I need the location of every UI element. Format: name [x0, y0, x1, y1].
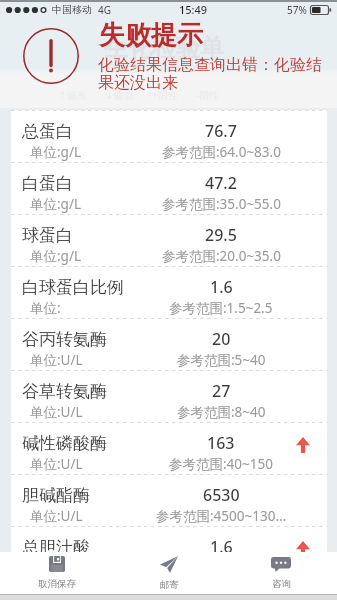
staticText: 谷草转氨酶 — [22, 381, 107, 402]
button[interactable]: Consult — [225, 557, 337, 590]
button[interactable]: 白蛋白 — [11, 162, 327, 214]
staticText: +阳性 — [152, 88, 178, 102]
button[interactable]: 胆碱酯酶 — [11, 474, 327, 526]
button[interactable]: 白球蛋白比例 — [11, 266, 327, 318]
staticText: 参考范围:5~40 — [177, 351, 266, 369]
staticText: 谷丙转氨酶 — [22, 329, 107, 350]
staticText: 15:49 — [179, 2, 208, 17]
staticText: 参考范围:4500~130… — [156, 507, 287, 525]
staticText: 参考范围:35.0~55.0 — [162, 195, 281, 213]
staticText: 47.2 — [205, 172, 237, 194]
staticText: 化验结果信息查询出错：化验结果还没出来 — [98, 55, 331, 92]
staticText: 参考范围:20.0~35.0 — [162, 247, 281, 265]
staticText: 碱性磷酸酶 — [22, 433, 107, 454]
staticText: 总蛋白 — [22, 121, 73, 142]
staticText: ↓偏低 — [105, 89, 134, 102]
button[interactable]: 总蛋白 — [11, 110, 327, 162]
staticText: 单位:U/L — [30, 507, 83, 525]
staticText: 参考范围:8~40 — [177, 403, 266, 421]
staticText: 单位:U/L — [30, 455, 83, 473]
button[interactable]: 谷草转氨酶 — [11, 370, 327, 422]
staticText: 57% — [287, 3, 307, 17]
staticText: 参考范围:40~150 — [169, 455, 273, 473]
staticText: 参考范围:1.5~2.5 — [169, 299, 273, 317]
staticText: 单位: — [30, 299, 61, 317]
button[interactable]: 碱性磷酸酶 — [11, 422, 327, 474]
staticText: 单位:g/L — [30, 143, 82, 161]
staticText: 取消保存 — [38, 578, 76, 590]
staticText: 总胆汁酸 — [22, 537, 90, 558]
staticText: 邮寄 — [160, 579, 179, 591]
staticText: 20 — [212, 328, 231, 350]
staticText: 白蛋白 — [22, 173, 73, 194]
staticText: 胆碱酯酶 — [22, 485, 90, 506]
button[interactable]: 谷丙转氨酶 — [11, 318, 327, 370]
staticText: 29.5 — [205, 224, 237, 246]
staticText: 1.6 — [210, 536, 233, 558]
button[interactable]: 球蛋白 — [11, 214, 327, 266]
staticText: 163 — [207, 432, 235, 454]
staticText: 咨询 — [272, 578, 291, 590]
staticText: 中国移动 — [52, 3, 92, 16]
staticText: 生化检验单 — [104, 33, 224, 63]
staticText: 27 — [212, 380, 231, 402]
button[interactable]: Cancel save — [0, 556, 113, 590]
staticText: 参考范围:64.0~83.0 — [162, 143, 281, 161]
staticText: 4G — [98, 3, 111, 17]
staticText: 白球蛋白比例 — [22, 277, 124, 298]
staticText: 失败提示 — [99, 19, 203, 52]
staticText: 单位:g/L — [30, 247, 82, 265]
button[interactable]: Mail — [113, 556, 225, 591]
staticText: 单位:g/L — [30, 195, 82, 213]
staticText: 单位:umol/L — [30, 559, 106, 577]
staticText: 球蛋白 — [22, 225, 73, 246]
button[interactable]: 总胆汁酸 — [11, 526, 327, 578]
staticText: 1.6 — [210, 276, 233, 298]
staticText: 6530 — [203, 484, 240, 506]
staticText: 单位:U/L — [30, 403, 83, 421]
staticText: 76.7 — [205, 120, 237, 142]
staticText: 单位:U/L — [30, 351, 83, 369]
